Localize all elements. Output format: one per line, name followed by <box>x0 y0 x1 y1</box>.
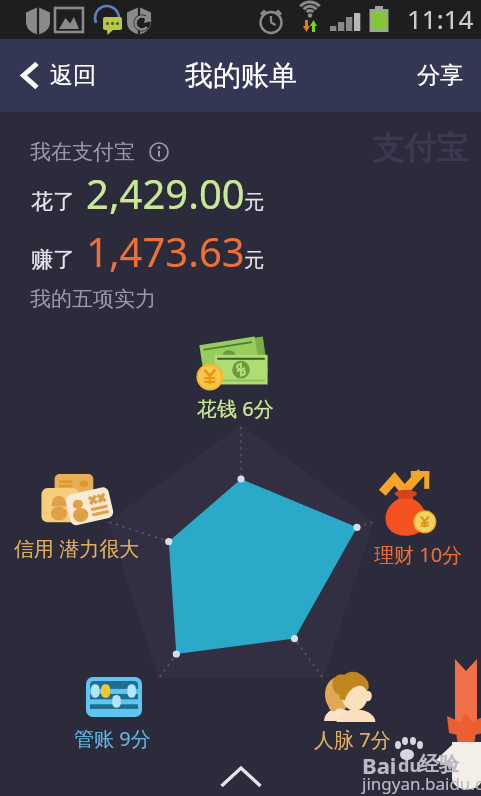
staticText: 2,429.00 <box>86 166 245 220</box>
staticText: 我的账单 <box>185 58 297 93</box>
staticText: 元 <box>244 248 264 273</box>
button[interactable]: 花钱 6分 <box>145 395 325 422</box>
staticText: jingyan.baidu.com <box>362 772 481 795</box>
staticText: 花钱 6分 <box>197 395 274 422</box>
button[interactable]: 管账 <box>86 677 142 717</box>
staticText: 11:14 <box>407 1 474 36</box>
staticText: 返回 <box>50 61 96 90</box>
button[interactable]: 分享 <box>399 39 481 112</box>
staticText: 人脉 7分 <box>314 726 391 753</box>
button[interactable]: 展开 <box>206 760 276 796</box>
button[interactable]: 管账 9分 <box>22 725 202 752</box>
button[interactable]: 理财 <box>380 471 436 537</box>
staticText: 经验 <box>419 752 459 777</box>
button[interactable]: 信用 潜力很大 <box>0 535 167 562</box>
staticText: 理财 10分 <box>374 541 463 568</box>
button[interactable]: 返回 <box>0 39 110 112</box>
staticText: 我在支付宝 <box>30 139 135 165</box>
staticText: 管账 9分 <box>74 725 151 752</box>
staticText: 信用 潜力很大 <box>14 535 140 562</box>
staticText: 支付宝 <box>372 128 468 168</box>
button[interactable]: 人脉 7分 <box>262 726 442 753</box>
staticText: 赚了 <box>31 246 75 274</box>
staticText: 分享 <box>417 61 463 90</box>
staticText: Bai <box>362 750 397 780</box>
button[interactable]: 人脉 <box>324 670 376 722</box>
button[interactable]: 信用 <box>40 473 113 527</box>
staticText: du <box>398 753 422 778</box>
staticText: 1,473.63 <box>86 224 245 278</box>
button[interactable]: 花钱 <box>199 336 269 393</box>
staticText: 花了 <box>31 188 75 216</box>
staticText: 元 <box>244 190 264 215</box>
button[interactable]: 理财 10分 <box>328 541 481 568</box>
staticText: 我的五项实力 <box>30 286 156 312</box>
